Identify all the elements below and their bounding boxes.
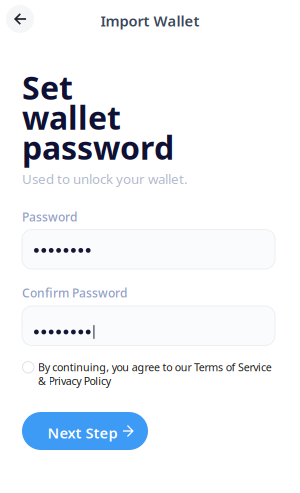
button[interactable]: Back <box>6 5 34 33</box>
staticText: By continuing, you agree to our Terms of… <box>38 360 272 374</box>
staticText: Password <box>22 209 77 225</box>
staticText: & Privacy Policy <box>38 374 111 388</box>
staticText: Set <box>22 66 73 108</box>
button[interactable]: By continuing, you agree to our Terms of… <box>22 360 272 388</box>
button[interactable]: Next Step <box>22 412 148 450</box>
staticText: Next Step <box>47 423 117 442</box>
staticText: password <box>22 126 174 168</box>
staticText: Confirm Password <box>22 285 127 301</box>
staticText: Import Wallet <box>100 11 199 30</box>
staticText: wallet <box>22 96 121 138</box>
staticText: Used to unlock your wallet. <box>22 170 188 188</box>
